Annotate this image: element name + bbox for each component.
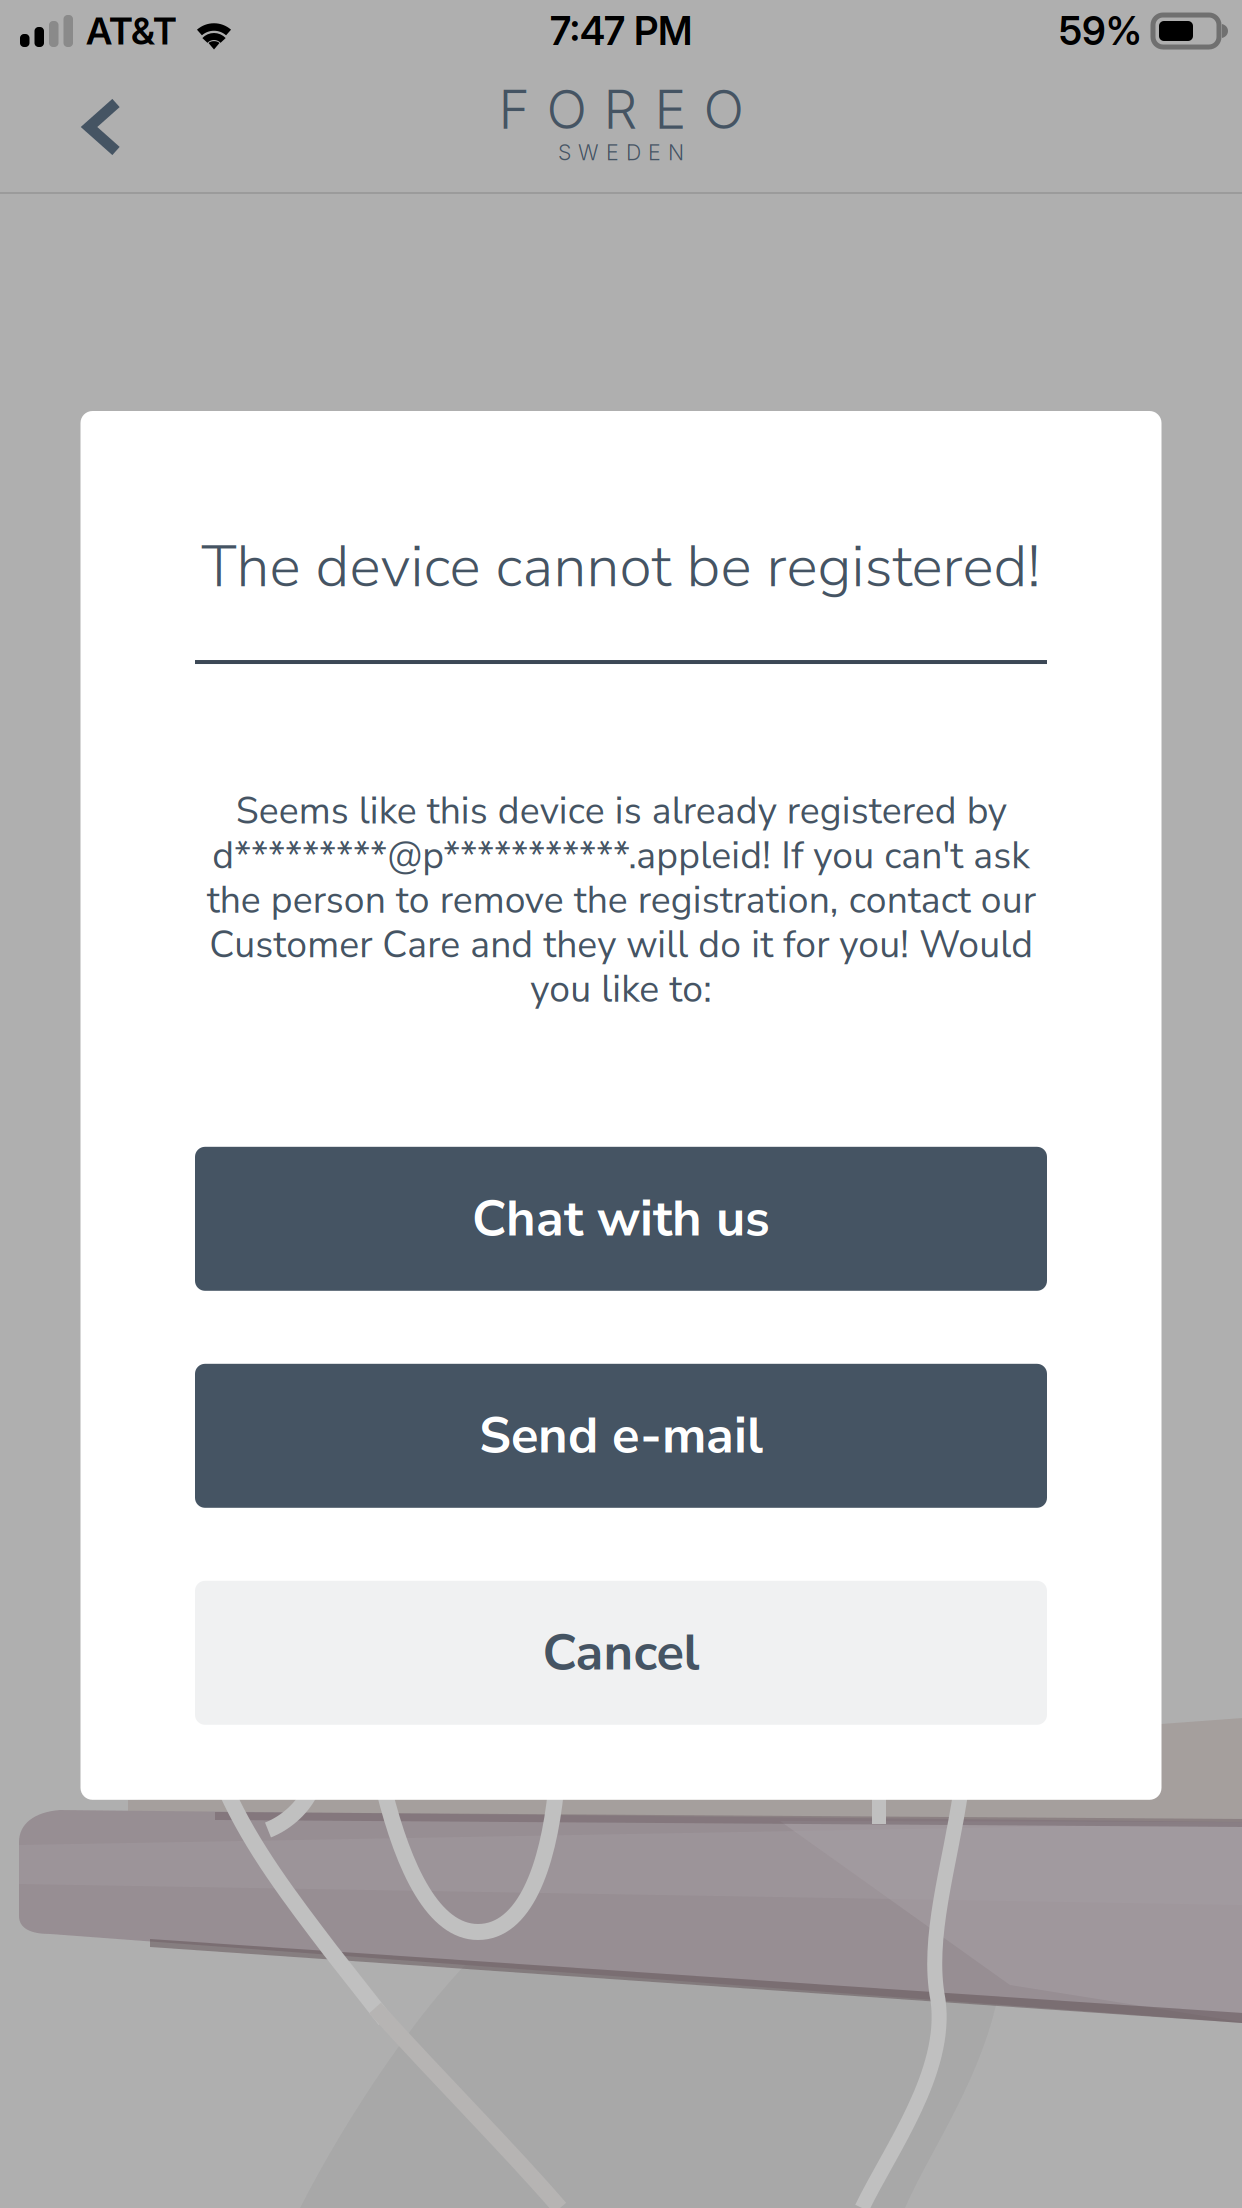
button[interactable]: Back: [0, 62, 166, 177]
button[interactable]: Chat with us: [195, 1147, 1047, 1291]
staticText: Send e-mail: [479, 1401, 763, 1470]
staticText: The device cannot be registered!: [201, 527, 1040, 607]
staticText: 7:47 PM: [550, 8, 692, 54]
button[interactable]: Send e-mail: [195, 1364, 1047, 1508]
staticText: SWEDEN: [558, 139, 684, 165]
button[interactable]: Cancel: [195, 1581, 1047, 1725]
staticText: AT&T: [86, 8, 177, 54]
staticText: Chat with us: [472, 1184, 770, 1253]
staticText: Seems like this device is already regist…: [206, 789, 1035, 1012]
staticText: FOREO: [498, 77, 743, 141]
staticText: 59%: [1059, 8, 1142, 54]
staticText: Cancel: [542, 1618, 699, 1687]
